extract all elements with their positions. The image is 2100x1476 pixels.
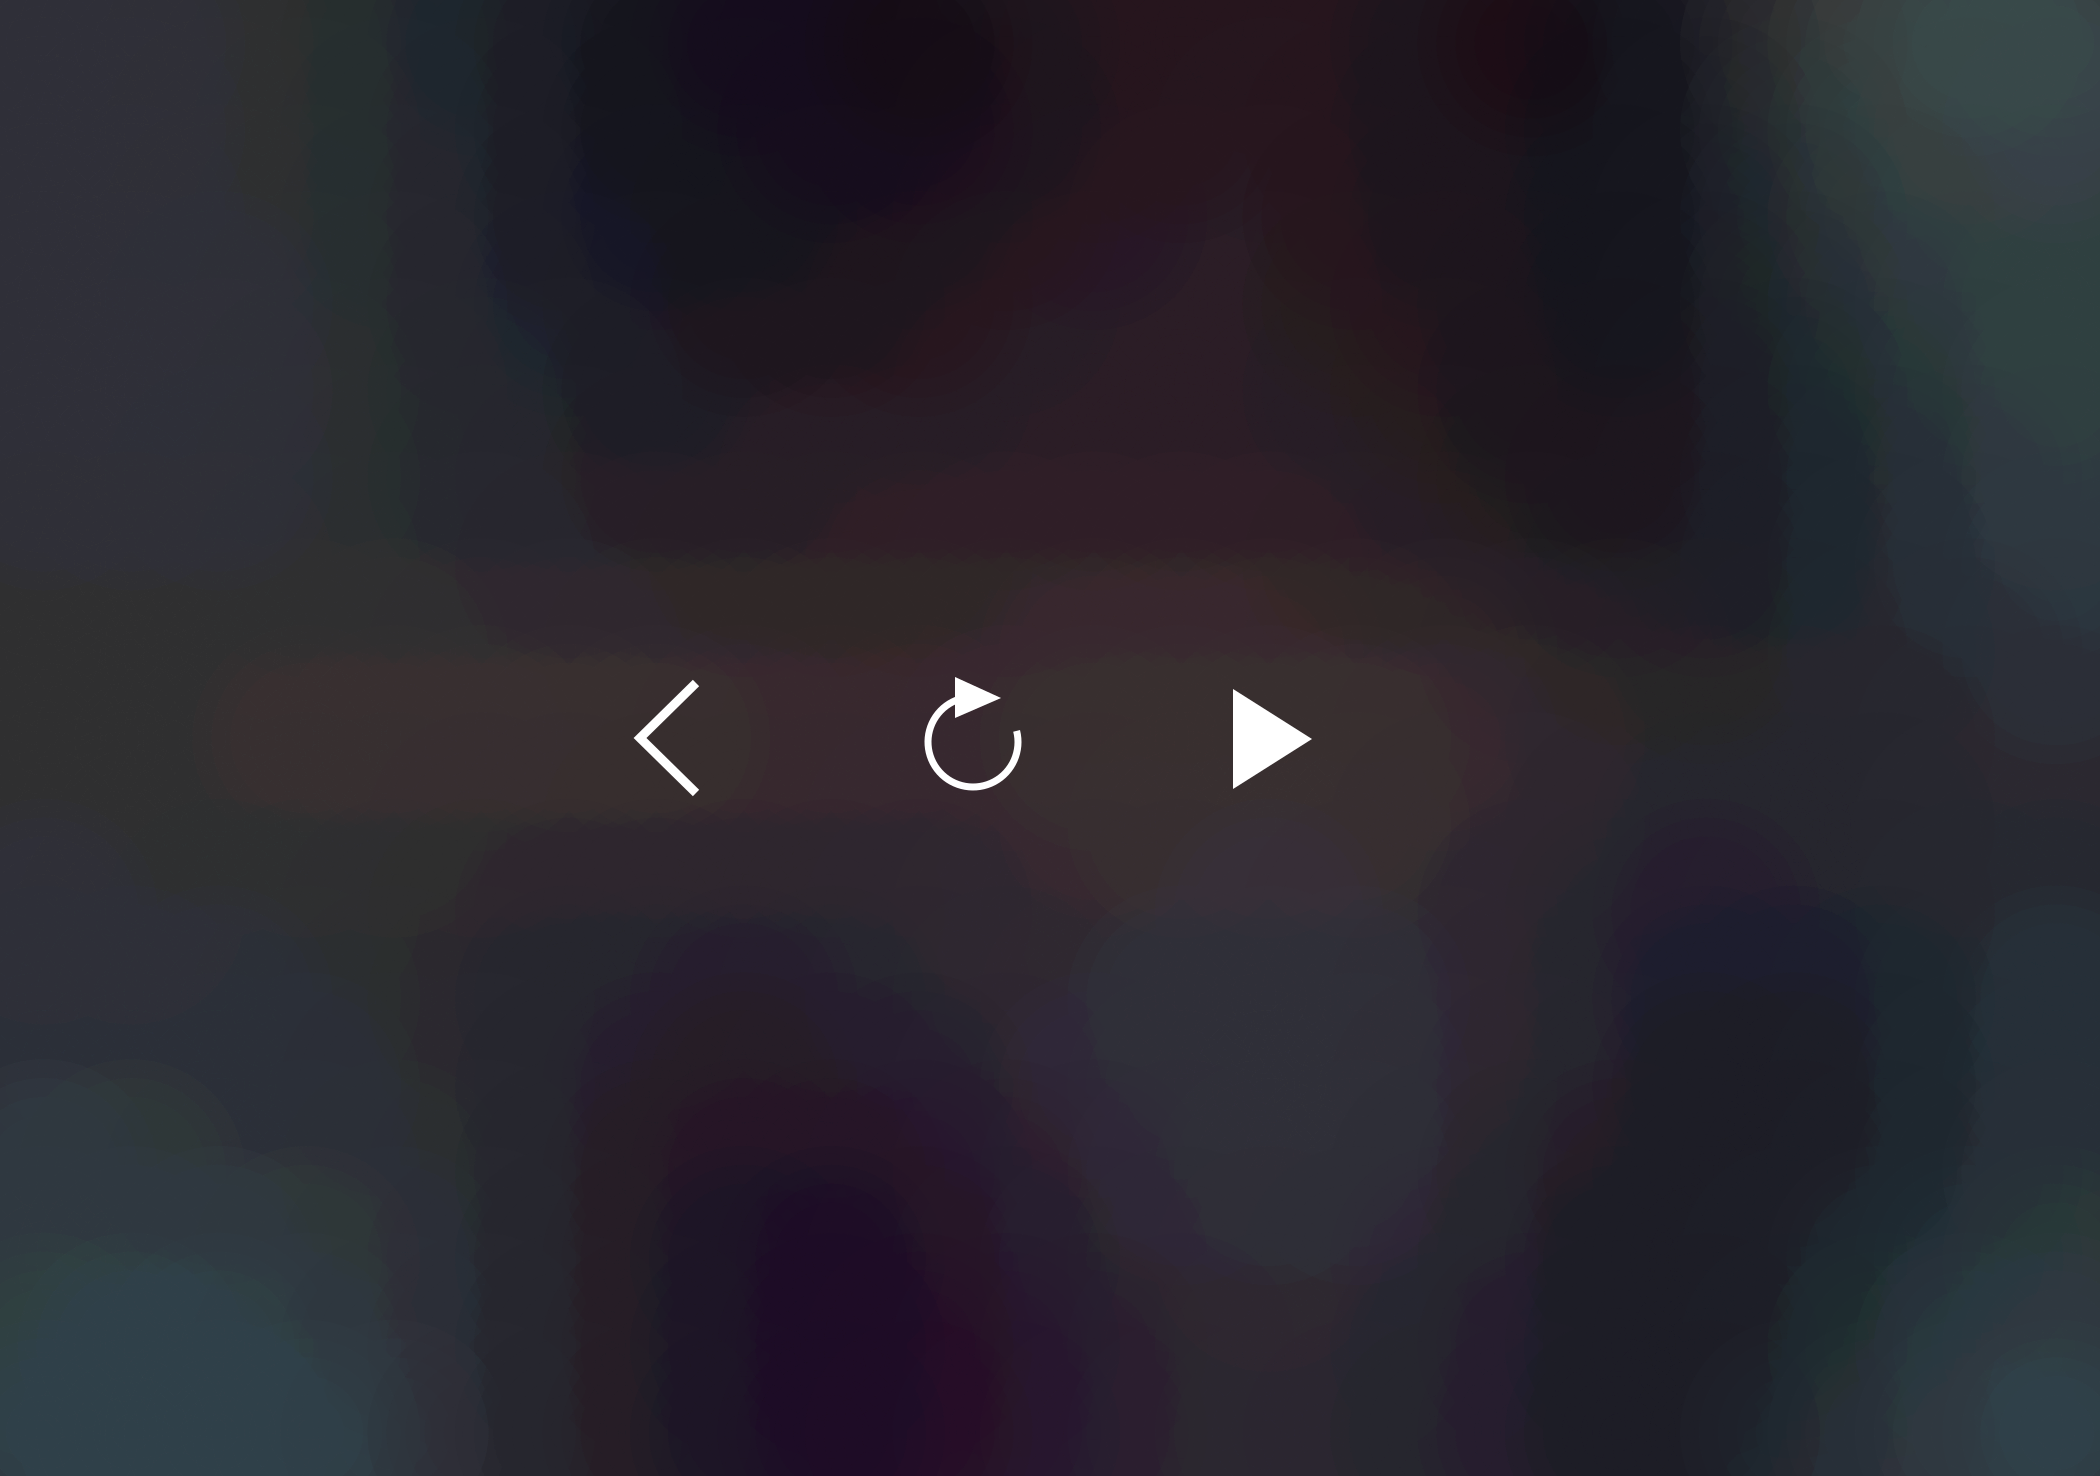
button[interactable]: Play: [1172, 639, 1372, 839]
button[interactable]: Previous: [568, 638, 768, 838]
button[interactable]: Replay: [873, 640, 1073, 840]
